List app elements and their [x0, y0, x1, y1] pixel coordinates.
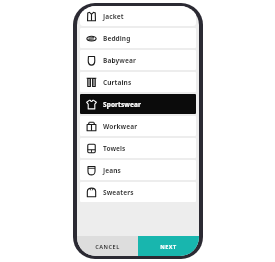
button[interactable]: CANCEL — [77, 236, 138, 256]
button[interactable]: Jeans — [80, 160, 196, 180]
staticText: Jeans — [103, 166, 121, 175]
button[interactable]: Workwear — [80, 116, 196, 136]
button[interactable]: Towels — [80, 138, 196, 158]
button[interactable]: Babywear — [80, 50, 196, 70]
button[interactable]: Bedding — [80, 28, 196, 48]
staticText: Towels — [103, 144, 126, 153]
button[interactable]: Curtains — [80, 72, 196, 92]
staticText: Jacket — [103, 12, 124, 21]
staticText: Curtains — [103, 78, 132, 87]
staticText: Babywear — [103, 56, 136, 65]
staticText: NEXT — [160, 243, 177, 250]
button[interactable]: Jacket — [80, 6, 196, 26]
button[interactable]: Sportswear — [80, 94, 196, 114]
staticText: Bedding — [103, 34, 131, 43]
staticText: CANCEL — [95, 243, 120, 250]
staticText: Sportswear — [103, 100, 141, 109]
staticText: Sweaters — [103, 188, 134, 197]
staticText: Workwear — [103, 122, 138, 131]
button[interactable]: Sweaters — [80, 182, 196, 202]
button[interactable]: NEXT — [138, 236, 199, 256]
